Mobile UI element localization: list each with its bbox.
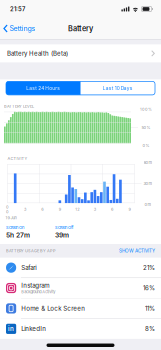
staticText: BATTERY USAGE BY APP: [6, 248, 56, 253]
staticText: Instagram: [21, 282, 49, 289]
staticText: in: [8, 325, 14, 332]
button[interactable]: Last 10 Days: [80, 81, 155, 95]
staticText: 12: [75, 207, 79, 212]
staticText: 6: [41, 207, 43, 212]
staticText: 21%: [143, 264, 155, 271]
staticText: 3: [94, 207, 96, 212]
button[interactable]: Instagram: [0, 278, 161, 298]
button[interactable]: Last 24 Hours: [6, 81, 80, 95]
staticText: 0%: [142, 143, 149, 148]
staticText: Last 24 Hours: [26, 85, 60, 91]
staticText: 9: [59, 207, 61, 212]
staticText: 16%: [143, 284, 155, 292]
staticText: 21:57: [10, 5, 25, 13]
staticText: 00: [6, 205, 9, 214]
button[interactable]: SHOW ACTIVITY: [119, 248, 155, 254]
button[interactable]: Safari: [0, 258, 161, 278]
staticText: Settings: [9, 24, 35, 33]
staticText: BATTERY LEVEL: [4, 104, 34, 109]
staticText: 6: [111, 207, 113, 212]
staticText: 19 Jun: [5, 215, 16, 220]
staticText: 39m: [55, 231, 69, 239]
staticText: Battery Health (Beta): [7, 50, 68, 57]
staticText: 9: [128, 207, 130, 212]
staticText: SHOW ACTIVITY: [119, 248, 155, 254]
staticText: 30m: [143, 181, 152, 186]
button[interactable]: Home & Lock Screen: [0, 298, 161, 318]
staticText: 3: [24, 207, 26, 212]
staticText: 50%: [141, 125, 150, 130]
staticText: 5h 27m: [6, 231, 30, 239]
button[interactable]: Settings: [0, 21, 35, 36]
staticText: Screen Off: [55, 225, 73, 230]
staticText: Home & Lock Screen: [21, 305, 85, 312]
staticText: Battery: [68, 24, 93, 33]
staticText: LinkedIn: [21, 325, 46, 332]
staticText: Safari: [21, 264, 36, 271]
staticText: 0m: [144, 202, 151, 207]
button[interactable]: Battery Health (Beta): [0, 44, 161, 62]
button[interactable]: in: [0, 319, 161, 339]
staticText: 100%: [140, 107, 152, 112]
staticText: Background Activity: [21, 289, 55, 294]
staticText: 11%: [145, 305, 155, 312]
staticText: Last 10 Days: [103, 85, 133, 91]
staticText: ACTIVITY: [7, 156, 27, 161]
staticText: 8%: [145, 325, 155, 332]
staticText: Screen On: [6, 225, 24, 230]
staticText: 60m: [143, 160, 152, 165]
